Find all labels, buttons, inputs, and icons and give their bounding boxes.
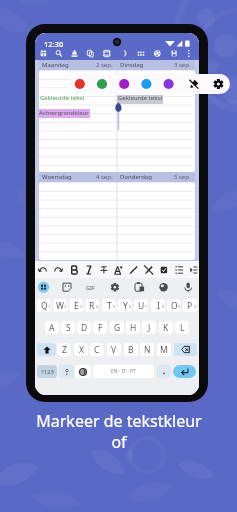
button[interactable]: Colour 3 — [114, 74, 134, 94]
button[interactable]: Colour 2 — [92, 74, 112, 94]
staticText: I — [157, 300, 160, 312]
button[interactable]: N — [140, 343, 154, 356]
button[interactable]: Enter — [173, 365, 196, 378]
staticText: O — [171, 300, 178, 312]
button[interactable]: I — [151, 299, 165, 312]
staticText: K — [163, 322, 169, 334]
staticText: U — [138, 300, 145, 312]
staticText: 4 — [96, 304, 99, 309]
button[interactable]: X — [74, 343, 88, 356]
staticText: Maandag — [42, 61, 69, 69]
staticText: 9 — [178, 304, 181, 309]
button[interactable]: O — [167, 299, 181, 312]
button[interactable]: W — [53, 299, 67, 312]
staticText: EN · IT · PT — [111, 368, 136, 375]
staticText: J — [148, 322, 151, 334]
staticText: 5 — [113, 304, 116, 309]
staticText: 1 — [48, 304, 51, 309]
button[interactable]: Change language — [75, 365, 91, 378]
staticText: P — [187, 300, 193, 312]
staticText: X — [79, 344, 84, 356]
staticText: 2 — [64, 304, 67, 309]
staticText: Q — [41, 300, 48, 312]
button[interactable]: D — [77, 321, 91, 334]
button[interactable]: J — [142, 321, 156, 334]
button[interactable]: M — [157, 343, 171, 356]
button[interactable]: F — [93, 321, 107, 334]
staticText: 12:30 — [44, 39, 64, 49]
staticText: Markeer de tekstkleur of — [36, 410, 202, 453]
staticText: S — [66, 322, 71, 334]
button[interactable]: U — [134, 299, 148, 312]
staticText: R — [89, 300, 95, 312]
button[interactable]: Y — [118, 299, 132, 312]
staticText: W — [56, 300, 64, 312]
staticText: 7 — [145, 304, 148, 309]
button[interactable]: H — [126, 321, 140, 334]
button[interactable]: E — [69, 299, 83, 312]
staticText: GIF — [86, 284, 95, 291]
staticText: T — [107, 300, 112, 312]
button[interactable]: Settings — [208, 74, 229, 94]
staticText: Gekleurde tekst — [118, 94, 163, 102]
staticText: A — [49, 322, 55, 334]
staticText: 0 — [194, 304, 197, 309]
staticText: C — [94, 344, 100, 356]
staticText: Woensdag — [42, 173, 72, 181]
staticText: 6 — [129, 304, 132, 309]
staticText: Z — [62, 344, 67, 356]
staticText: Gekleurde tekst — [40, 94, 85, 102]
staticText: Donderdag — [120, 173, 152, 181]
button[interactable]: L — [175, 321, 189, 334]
button[interactable]: G — [110, 321, 124, 334]
staticText: V — [111, 344, 117, 356]
button[interactable]: K — [159, 321, 173, 334]
button[interactable]: EN · IT · PT — [93, 365, 154, 378]
staticText: 5 sep. — [174, 173, 191, 181]
staticText: Dinsdag — [120, 61, 144, 69]
staticText: D — [81, 322, 88, 334]
staticText: 3 — [80, 304, 83, 309]
button[interactable]: A — [45, 321, 59, 334]
button[interactable]: Q — [37, 299, 51, 312]
staticText: G — [114, 322, 121, 334]
staticText: B — [128, 344, 134, 356]
button[interactable]: Shift — [37, 343, 56, 356]
staticText: L — [180, 322, 185, 334]
staticText: 3 sep. — [174, 61, 191, 69]
staticText: 2 sep. — [96, 61, 113, 69]
button[interactable]: V — [107, 343, 121, 356]
staticText: M — [160, 344, 168, 356]
button[interactable]: C — [90, 343, 104, 356]
button[interactable]: S — [61, 321, 75, 334]
button[interactable]: Colour 4 — [136, 74, 156, 94]
button[interactable]: Backspace — [174, 343, 197, 356]
staticText: ?123 — [41, 368, 54, 376]
staticText: E — [74, 300, 79, 312]
button[interactable]: Period — [157, 365, 171, 378]
button[interactable]: Colour 1 — [70, 74, 90, 94]
button[interactable]: Z — [57, 343, 71, 356]
staticText: Y — [123, 300, 128, 312]
staticText: Achtergrondkleur — [39, 109, 89, 117]
staticText: F — [98, 322, 103, 334]
staticText: N — [144, 344, 151, 356]
button[interactable]: No colour — [184, 74, 205, 94]
button[interactable]: Comma — [59, 365, 74, 378]
button[interactable]: B — [124, 343, 138, 356]
button[interactable]: P — [183, 299, 197, 312]
button[interactable]: R — [85, 299, 99, 312]
button[interactable]: T — [102, 299, 116, 312]
button[interactable]: ?123 — [37, 365, 57, 378]
staticText: 4 sep. — [96, 173, 113, 181]
staticText: 8 — [162, 304, 165, 309]
staticText: H — [130, 322, 137, 334]
button[interactable]: Colour 5 — [159, 74, 179, 94]
